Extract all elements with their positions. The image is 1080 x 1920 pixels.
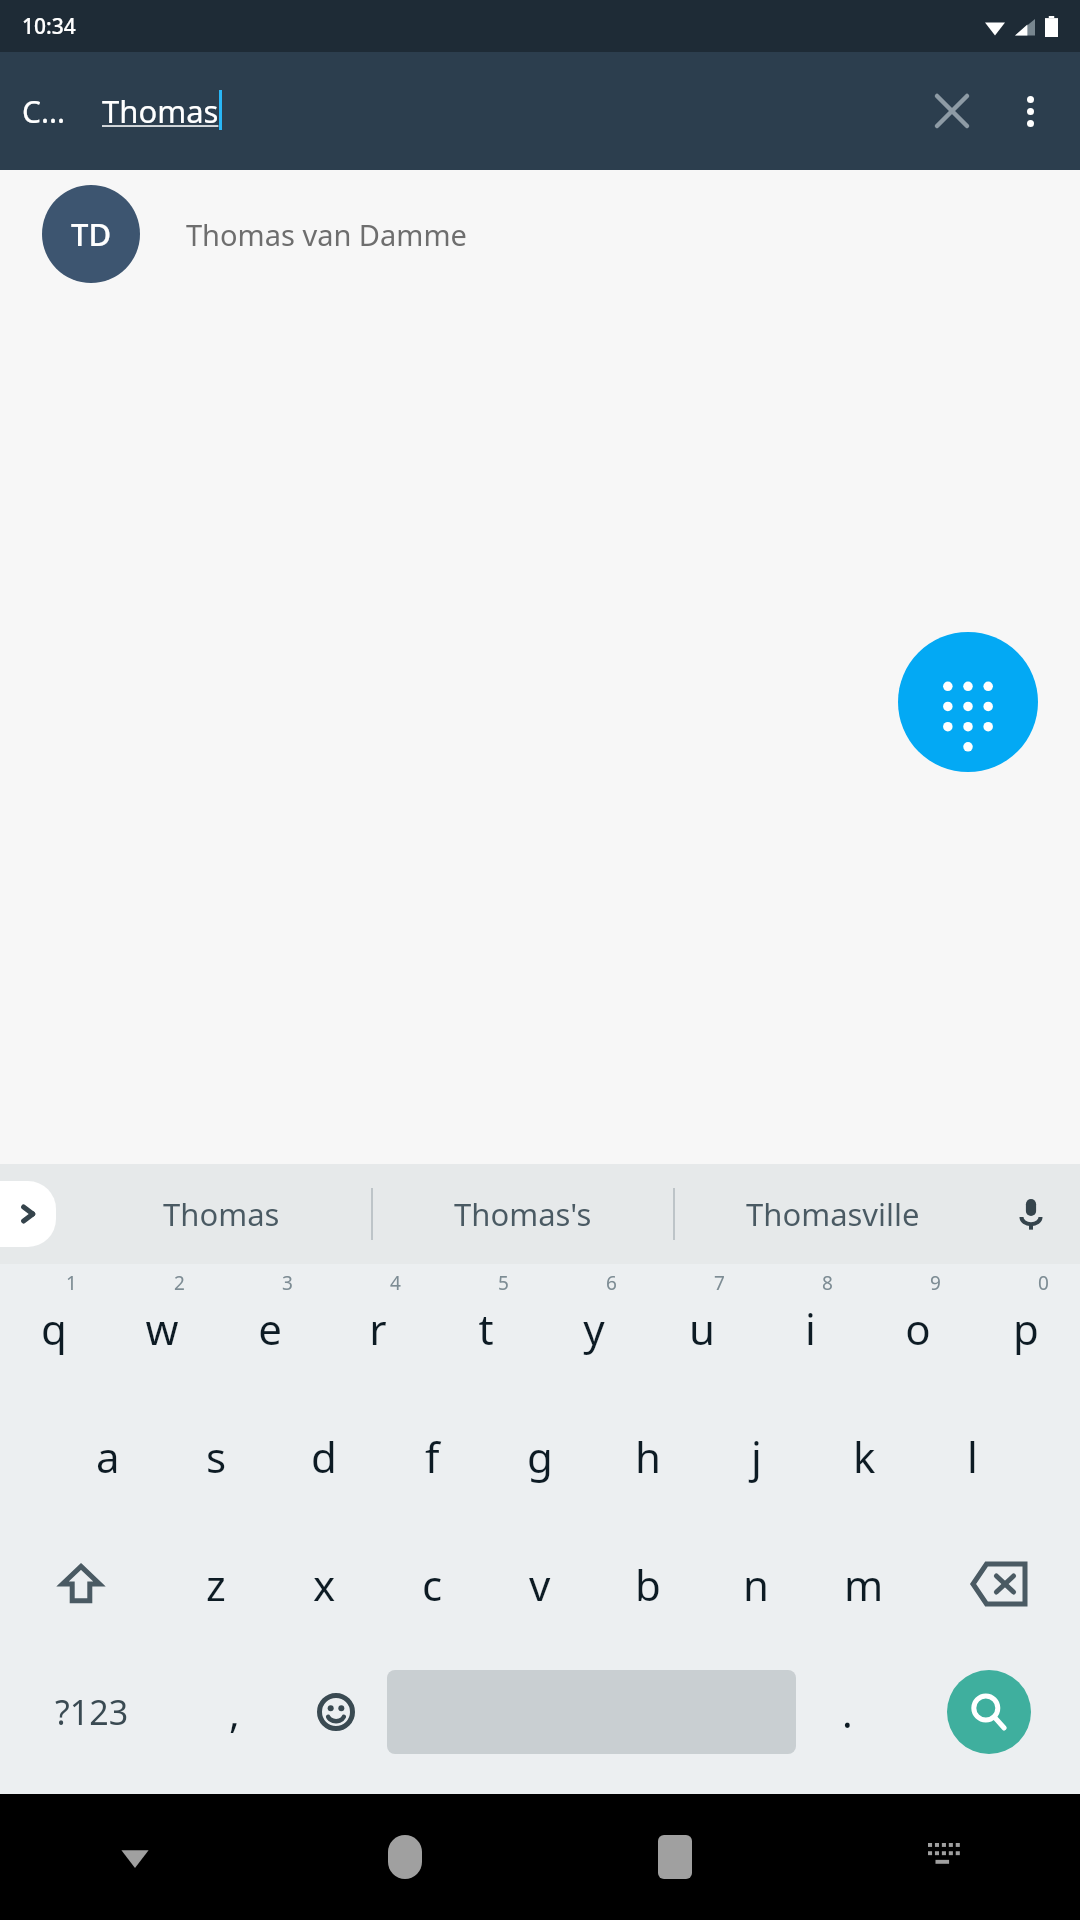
button[interactable]: b <box>594 1520 702 1648</box>
button[interactable]: t <box>432 1264 540 1392</box>
button[interactable]: Thomasville <box>675 1164 990 1264</box>
button[interactable]: m <box>810 1520 918 1648</box>
staticText: Thomas <box>163 1193 280 1235</box>
button[interactable]: Expand suggestions <box>0 1181 56 1247</box>
staticText: , <box>229 1685 240 1739</box>
button[interactable]: o <box>864 1264 972 1392</box>
button[interactable]: a <box>54 1392 162 1520</box>
button[interactable]: y <box>540 1264 648 1392</box>
staticText: k <box>853 1428 876 1485</box>
button[interactable]: c <box>378 1520 486 1648</box>
staticText: e <box>258 1300 282 1357</box>
staticText: j <box>751 1428 762 1485</box>
staticText: x <box>313 1556 336 1613</box>
staticText: q <box>41 1300 67 1357</box>
staticText: p <box>1013 1300 1039 1357</box>
button[interactable]: v <box>486 1520 594 1648</box>
button[interactable]: , <box>183 1648 285 1776</box>
button[interactable]: TD <box>0 170 1080 298</box>
button[interactable]: Search <box>898 1648 1080 1776</box>
staticText: Thomasville <box>746 1193 920 1235</box>
staticText: 4 <box>390 1270 401 1296</box>
button[interactable]: d <box>270 1392 378 1520</box>
staticText: Thomas van Damme <box>186 215 467 254</box>
staticText: 10:34 <box>22 12 76 41</box>
staticText: Thomas <box>102 90 219 132</box>
button[interactable]: Back <box>0 1794 270 1920</box>
staticText: t <box>478 1300 494 1357</box>
staticText: r <box>369 1300 387 1357</box>
button[interactable]: q <box>0 1264 108 1392</box>
staticText: c <box>422 1556 443 1613</box>
button[interactable]: n <box>702 1520 810 1648</box>
staticText: w <box>145 1300 179 1357</box>
button[interactable]: Shift <box>0 1520 162 1648</box>
button[interactable]: k <box>810 1392 918 1520</box>
button[interactable]: . <box>796 1648 898 1776</box>
staticText: 7 <box>714 1270 725 1296</box>
staticText: ?123 <box>55 1689 129 1735</box>
button[interactable]: Dialpad <box>898 632 1038 772</box>
button[interactable]: Recent apps <box>540 1794 810 1920</box>
staticText: 2 <box>174 1270 185 1296</box>
button[interactable]: e <box>216 1264 324 1392</box>
button[interactable]: Switch keyboard <box>810 1794 1080 1920</box>
button[interactable]: w <box>108 1264 216 1392</box>
staticText: f <box>425 1428 440 1485</box>
button[interactable]: u <box>648 1264 756 1392</box>
button[interactable]: Thomas's <box>373 1164 673 1264</box>
staticText: n <box>743 1556 769 1613</box>
button[interactable]: x <box>270 1520 378 1648</box>
staticText: y <box>583 1300 605 1357</box>
staticText: 8 <box>822 1270 833 1296</box>
staticText: a <box>96 1428 120 1485</box>
button[interactable]: h <box>594 1392 702 1520</box>
staticText: m <box>844 1556 884 1613</box>
staticText: C... <box>22 91 66 132</box>
button[interactable]: z <box>162 1520 270 1648</box>
staticText: s <box>206 1428 227 1485</box>
button[interactable]: Thomas <box>72 1164 371 1264</box>
button[interactable]: i <box>756 1264 864 1392</box>
button[interactable]: ?123 <box>0 1648 183 1776</box>
staticText: . <box>842 1685 853 1739</box>
button[interactable]: s <box>162 1392 270 1520</box>
staticText: o <box>905 1300 931 1357</box>
staticText: 3 <box>282 1270 293 1296</box>
button[interactable]: Voice input <box>990 1164 1072 1264</box>
staticText: z <box>206 1556 226 1613</box>
staticText: i <box>805 1300 816 1357</box>
staticText: l <box>967 1428 978 1485</box>
staticText: b <box>635 1556 661 1613</box>
staticText: d <box>311 1428 337 1485</box>
button[interactable]: Emoji <box>285 1648 387 1776</box>
staticText: h <box>635 1428 661 1485</box>
button[interactable]: More options <box>1002 83 1058 139</box>
button[interactable]: l <box>918 1392 1026 1520</box>
staticText: TD <box>71 213 112 255</box>
staticText: u <box>689 1300 715 1357</box>
button[interactable]: g <box>486 1392 594 1520</box>
staticText: 9 <box>930 1270 941 1296</box>
staticText: g <box>527 1428 553 1485</box>
button[interactable]: Clear search <box>924 83 980 139</box>
staticText: v <box>529 1556 551 1613</box>
staticText: 5 <box>498 1270 509 1296</box>
button[interactable]: p <box>972 1264 1080 1392</box>
button[interactable]: f <box>378 1392 486 1520</box>
button[interactable]: r <box>324 1264 432 1392</box>
button[interactable]: j <box>702 1392 810 1520</box>
staticText: Thomas's <box>454 1193 592 1235</box>
staticText: 6 <box>606 1270 617 1296</box>
staticText: 0 <box>1038 1270 1049 1296</box>
button[interactable]: Backspace <box>918 1520 1080 1648</box>
staticText: 1 <box>66 1270 77 1296</box>
button[interactable]: Home <box>270 1794 540 1920</box>
